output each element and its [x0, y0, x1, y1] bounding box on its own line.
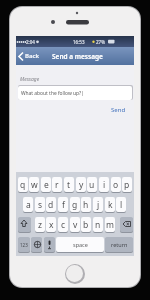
staticText: l: [120, 199, 123, 211]
staticText: i: [103, 179, 106, 191]
button[interactable]: u: [87, 177, 97, 192]
button[interactable]: [120, 217, 133, 232]
button[interactable]: y: [76, 177, 86, 192]
button[interactable]: t: [64, 177, 74, 192]
button[interactable]: e: [41, 177, 51, 192]
staticText: return: [111, 241, 128, 248]
button[interactable]: [18, 217, 31, 232]
staticText: s: [38, 199, 43, 211]
staticText: b: [83, 219, 89, 231]
staticText: 2:04: [26, 39, 35, 45]
staticText: space: [73, 241, 88, 248]
button[interactable]: z: [35, 217, 45, 232]
button[interactable]: g: [70, 197, 80, 212]
staticText: u: [89, 179, 95, 191]
button[interactable]: n: [93, 217, 103, 232]
button[interactable]: c: [58, 217, 68, 232]
staticText: Send a message: [52, 52, 103, 61]
staticText: r: [55, 179, 59, 191]
staticText: 27%: [96, 39, 105, 45]
staticText: w: [31, 179, 38, 191]
staticText: d: [48, 199, 54, 211]
staticText: p: [124, 179, 130, 191]
button[interactable]: b: [81, 217, 91, 232]
button[interactable]: return: [105, 237, 133, 252]
button[interactable]: 123: [18, 237, 30, 252]
button[interactable]: [44, 237, 55, 252]
button[interactable]: j: [93, 197, 103, 212]
staticText: q: [20, 179, 26, 191]
button[interactable]: q: [18, 177, 28, 192]
staticText: g: [72, 199, 78, 211]
staticText: e: [44, 179, 49, 191]
staticText: o: [113, 179, 119, 191]
button[interactable]: l: [116, 197, 126, 212]
staticText: n: [95, 219, 101, 231]
button[interactable]: o: [111, 177, 121, 192]
button[interactable]: [31, 237, 42, 252]
button[interactable]: k: [105, 197, 115, 212]
button[interactable]: Back: [18, 47, 40, 65]
staticText: What about the follow up?|: [21, 90, 84, 97]
staticText: k: [108, 199, 113, 211]
staticText: Back: [25, 52, 40, 60]
button[interactable]: What about the follow up?|: [18, 86, 132, 100]
button[interactable]: x: [46, 217, 56, 232]
button[interactable]: a: [23, 197, 33, 212]
staticText: c: [61, 219, 66, 231]
button[interactable]: f: [58, 197, 68, 212]
button[interactable]: i: [99, 177, 109, 192]
staticText: j: [97, 199, 100, 211]
button[interactable]: r: [52, 177, 62, 192]
button[interactable]: s: [35, 197, 45, 212]
staticText: y: [79, 179, 84, 191]
staticText: f: [62, 199, 65, 211]
staticText: z: [38, 219, 42, 231]
button[interactable]: w: [29, 177, 39, 192]
staticText: h: [83, 199, 89, 211]
button[interactable]: space: [56, 237, 104, 252]
button[interactable]: m: [105, 217, 115, 232]
staticText: x: [49, 219, 54, 231]
staticText: Send: [111, 106, 126, 114]
button[interactable]: Send: [111, 106, 126, 114]
staticText: a: [26, 199, 31, 211]
button[interactable]: d: [46, 197, 56, 212]
button[interactable]: h: [81, 197, 91, 212]
staticText: t: [67, 179, 71, 191]
staticText: 123: [20, 242, 28, 248]
staticText: v: [73, 219, 78, 231]
button[interactable]: [65, 264, 85, 284]
staticText: m: [106, 219, 114, 231]
button[interactable]: p: [122, 177, 132, 192]
staticText: 16:53: [73, 39, 85, 45]
button[interactable]: v: [70, 217, 80, 232]
staticText: Message: [20, 76, 40, 83]
